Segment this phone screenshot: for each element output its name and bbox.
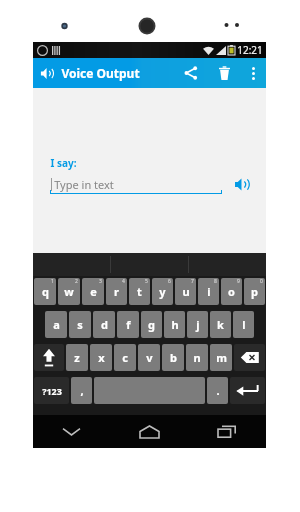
staticText: 7 (191, 278, 194, 285)
staticText: 8 (214, 278, 217, 285)
staticText: j (196, 317, 200, 332)
staticText: e (90, 284, 97, 299)
staticText: Type in text (54, 177, 114, 192)
staticText: ?123 (42, 385, 62, 397)
staticText: a (53, 317, 60, 332)
staticText: f (126, 317, 131, 332)
staticText: Voice Output (61, 65, 140, 81)
button[interactable]: e (82, 278, 104, 305)
button[interactable]: ?123 (34, 377, 69, 404)
button[interactable]: Enter (230, 377, 265, 404)
button[interactable]: k (210, 311, 231, 338)
staticText: r (114, 284, 119, 299)
button[interactable]: t (129, 278, 150, 305)
staticText: q (42, 284, 49, 299)
staticText: l (242, 317, 246, 332)
button[interactable]: Back (33, 415, 110, 448)
staticText: . (216, 383, 220, 398)
staticText: u (182, 284, 190, 299)
button[interactable]: o (221, 278, 242, 305)
staticText: 1 (51, 278, 54, 285)
button[interactable]: Type in text (50, 174, 222, 194)
staticText: 6 (168, 278, 171, 285)
staticText: n (193, 350, 201, 365)
button[interactable]: a (45, 311, 67, 338)
staticText: 5 (145, 278, 148, 285)
staticText: k (217, 317, 224, 332)
button[interactable]: x (90, 344, 112, 371)
button[interactable]: Speak (231, 173, 253, 195)
staticText: , (80, 383, 84, 398)
button[interactable]: l (233, 311, 254, 338)
button[interactable]: c (114, 344, 136, 371)
button[interactable]: m (210, 344, 232, 371)
button[interactable]: , (71, 377, 92, 404)
staticText: g (148, 317, 155, 332)
button[interactable]: App icon (40, 65, 140, 81)
button[interactable]: More options (240, 58, 266, 88)
staticText: p (251, 284, 258, 299)
button[interactable]: z (66, 344, 88, 371)
button[interactable]: g (141, 311, 162, 338)
button[interactable]: v (138, 344, 160, 371)
other: App icon (40, 66, 55, 81)
staticText: 0 (260, 278, 263, 285)
button[interactable]: q (34, 278, 56, 305)
staticText: I say: (50, 156, 77, 170)
button[interactable]: s (69, 311, 91, 338)
staticText: m (216, 350, 227, 365)
button[interactable]: Share (174, 58, 208, 88)
button[interactable]: d (93, 311, 115, 338)
staticText: 3 (99, 278, 102, 285)
staticText: i (207, 284, 211, 299)
staticText: w (64, 284, 74, 299)
staticText: b (170, 350, 177, 365)
button[interactable]: b (162, 344, 184, 371)
button[interactable]: u (175, 278, 196, 305)
button[interactable]: r (106, 278, 127, 305)
button[interactable]: h (164, 311, 185, 338)
button[interactable]: Backspace (234, 344, 265, 371)
staticText: t (137, 284, 142, 299)
staticText: 12:21 (237, 43, 263, 57)
button[interactable]: Shift (34, 344, 64, 371)
staticText: s (77, 317, 83, 332)
staticText: d (101, 317, 108, 332)
staticText: v (146, 350, 153, 365)
staticText: o (228, 284, 235, 299)
button[interactable]: j (187, 311, 208, 338)
staticText: 9 (237, 278, 240, 285)
staticText: c (122, 350, 128, 365)
button[interactable]: w (58, 278, 80, 305)
staticText: 2 (75, 278, 78, 285)
button[interactable]: y (152, 278, 173, 305)
staticText: y (159, 284, 166, 299)
staticText: z (74, 350, 80, 365)
button[interactable]: i (198, 278, 219, 305)
staticText: x (98, 350, 105, 365)
staticText: h (171, 317, 179, 332)
button[interactable]: Home (110, 415, 188, 448)
button[interactable]: n (186, 344, 208, 371)
button[interactable]: p (244, 278, 265, 305)
button[interactable]: Recents (188, 415, 266, 448)
button[interactable]: Delete (208, 58, 240, 88)
staticText: 4 (122, 278, 125, 285)
button[interactable]: . (207, 377, 228, 404)
button[interactable]: f (117, 311, 139, 338)
